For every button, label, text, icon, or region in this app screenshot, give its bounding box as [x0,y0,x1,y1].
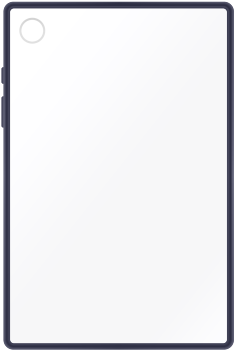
button[interactable]: Navy tablet case product image [0,0,236,350]
